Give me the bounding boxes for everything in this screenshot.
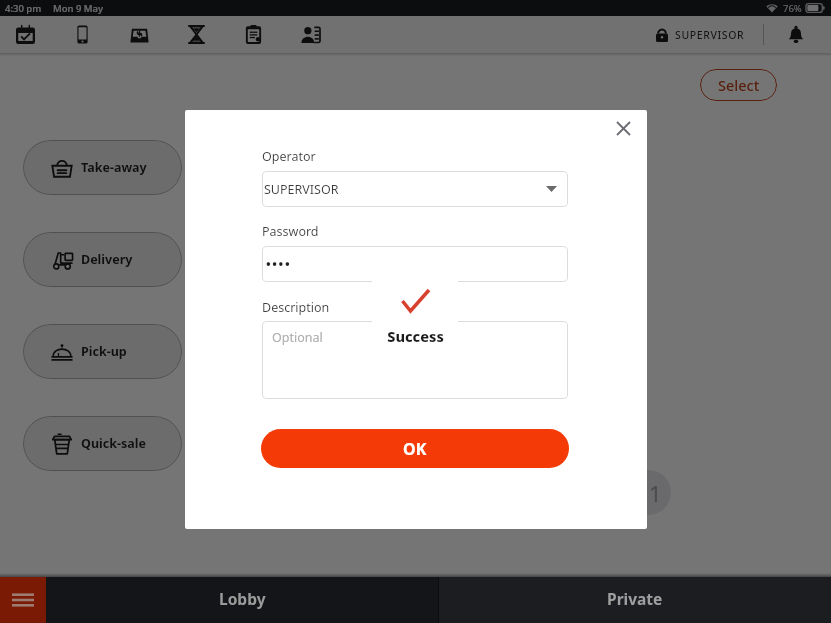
staticText: Take-away — [81, 159, 147, 176]
button[interactable]: SUPERVISOR — [650, 16, 751, 53]
button[interactable]: OK — [261, 429, 569, 468]
staticText: Pick-up — [81, 343, 127, 360]
button[interactable]: SUPERVISOR — [262, 171, 568, 207]
button[interactable]: Hourglass — [178, 16, 215, 53]
button[interactable]: Delivery — [23, 232, 182, 287]
staticText: Lobby — [219, 588, 266, 609]
staticText: •••• — [266, 256, 292, 273]
button[interactable]: Customers — [292, 16, 329, 53]
button[interactable]: Clipboard — [235, 16, 272, 53]
staticText: Success — [387, 326, 444, 346]
staticText: 4:30 pm — [5, 2, 42, 15]
button[interactable]: •••• — [262, 246, 568, 282]
button[interactable]: Private — [439, 577, 831, 623]
staticText: 76% — [783, 2, 802, 15]
button[interactable]: Close — [600, 110, 646, 151]
button[interactable]: Optional — [262, 321, 568, 399]
staticText: SUPERVISOR — [675, 28, 745, 42]
staticText: Optional — [272, 329, 323, 346]
button[interactable]: Calendar — [7, 16, 44, 53]
staticText: Select — [718, 75, 760, 95]
button[interactable]: Cash drawer — [121, 16, 158, 53]
button[interactable]: Lobby — [46, 577, 438, 623]
staticText: Description — [262, 299, 330, 316]
staticText: 1 — [649, 478, 662, 508]
button[interactable]: Mobile — [64, 16, 101, 53]
staticText: OK — [403, 438, 427, 460]
staticText: Mon 9 May — [53, 2, 104, 15]
button[interactable]: Pick-up — [23, 324, 182, 379]
staticText: Delivery — [81, 251, 133, 268]
button[interactable]: Notifications — [776, 16, 816, 53]
staticText: Password — [262, 223, 319, 240]
staticText: Quick-sale — [81, 435, 146, 452]
button[interactable]: Orders: 1 — [626, 470, 671, 515]
button[interactable]: Quick-sale — [23, 416, 182, 471]
staticText: Private — [607, 588, 663, 609]
button[interactable]: Menu — [0, 577, 46, 623]
staticText: SUPERVISOR — [264, 181, 339, 198]
button[interactable]: Take-away — [23, 140, 182, 195]
button[interactable]: Select — [700, 69, 777, 101]
staticText: Operator — [262, 148, 316, 165]
